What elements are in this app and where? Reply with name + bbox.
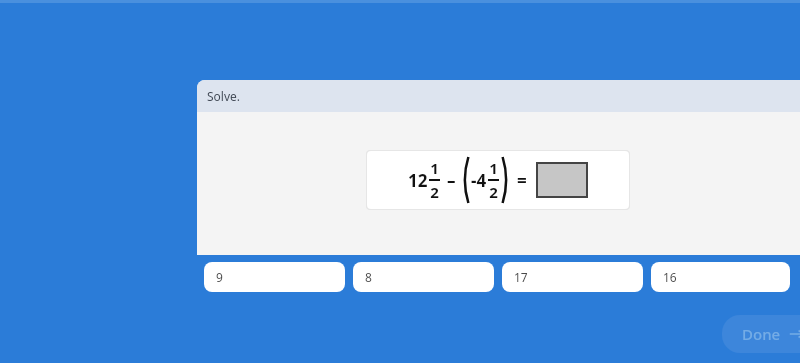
button[interactable]: 17 (502, 262, 643, 292)
staticText: 8 (365, 269, 372, 285)
button[interactable]: 16 (651, 262, 790, 292)
staticText: Done (742, 324, 781, 344)
staticText: 2 (430, 182, 439, 202)
staticText: 16 (663, 269, 677, 285)
button[interactable]: 9 (204, 262, 345, 292)
staticText: 1 (489, 158, 498, 178)
staticText: – (447, 169, 456, 192)
button[interactable]: Done (722, 315, 800, 353)
staticText: = (517, 169, 527, 192)
staticText: 9 (216, 269, 223, 285)
staticText: 17 (514, 269, 528, 285)
staticText: 2 (489, 182, 498, 202)
staticText: 12 (408, 169, 428, 192)
button[interactable]: 8 (353, 262, 494, 292)
staticText: 1 (430, 158, 439, 178)
staticText: -4 (471, 169, 487, 192)
staticText: Solve. (207, 88, 241, 104)
